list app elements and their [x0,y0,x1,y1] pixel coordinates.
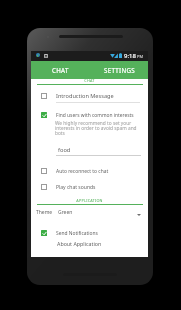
staticText: Auto reconnect to chat [56,168,109,175]
staticText: We highly recommend to set your interest… [55,120,147,137]
staticText: SETTINGS [104,66,135,74]
button[interactable]: SETTINGS [90,61,149,79]
staticText: Send Notifications [56,230,98,237]
staticText: CHAT [37,78,142,83]
button[interactable]: Theme [31,205,148,220]
staticText: About Application [57,240,102,247]
staticText: CHAT [52,66,69,74]
button[interactable]: Find users with common interests [31,107,148,123]
button[interactable]: Auto reconnect to chat [31,163,148,179]
button[interactable]: Play chat sounds [31,179,148,195]
staticText: APPLICATION [37,198,142,203]
staticText: Introduction Message [56,92,114,100]
staticText: food [58,146,71,154]
button[interactable]: About Application [31,236,148,251]
staticText: Theme [36,209,53,216]
staticText: Play chat sounds [56,184,96,191]
staticText: 9:18 [124,52,136,60]
staticText: Green [58,209,73,216]
staticText: PM [137,54,144,59]
button[interactable]: Send Notifications [31,225,148,241]
button[interactable]: Introduction Message [31,88,148,104]
staticText: Find users with common interests [56,112,134,119]
button[interactable]: CHAT [31,61,90,79]
